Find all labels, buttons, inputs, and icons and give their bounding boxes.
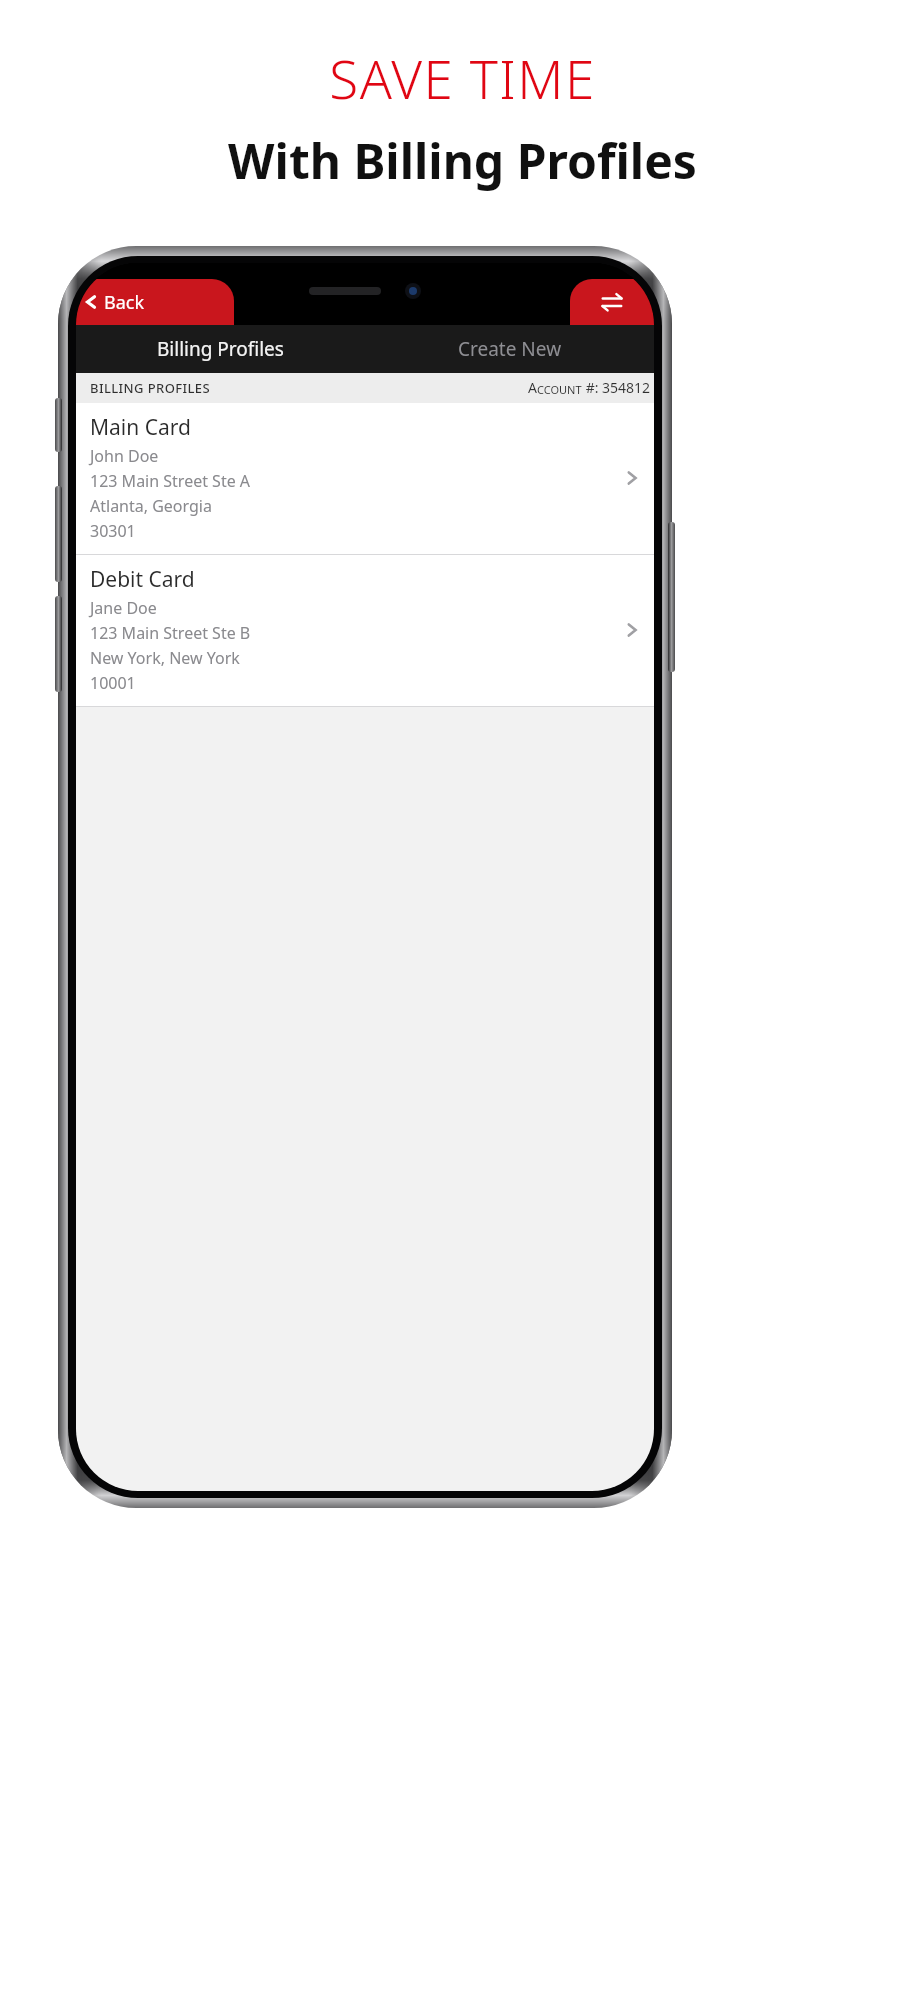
staticText: 30301 — [90, 520, 136, 542]
staticText: BILLING PROFILES — [90, 379, 211, 397]
staticText: Main Card — [90, 413, 191, 442]
staticText: CCOUNT — [537, 382, 582, 397]
staticText: A — [528, 378, 537, 397]
staticText: Back — [104, 290, 145, 315]
staticText: New York, New York — [90, 647, 240, 669]
staticText: Atlanta, Georgia — [90, 495, 212, 517]
button[interactable]: Switch account — [570, 279, 654, 325]
staticText: 123 Main Street Ste A — [90, 470, 251, 492]
staticText: Jane Doe — [90, 597, 157, 619]
staticText: Create New — [458, 336, 562, 362]
staticText: #: 354812 — [582, 378, 651, 397]
staticText: John Doe — [90, 445, 159, 467]
button[interactable]: Debit Card — [76, 555, 654, 706]
button[interactable]: Back — [76, 279, 234, 325]
staticText: Debit Card — [90, 565, 195, 594]
button[interactable]: Create New — [365, 325, 654, 373]
staticText: With Billing Profiles — [228, 128, 697, 193]
staticText: 123 Main Street Ste B — [90, 622, 251, 644]
staticText: SAVE TIME — [329, 42, 596, 114]
button[interactable]: Main Card — [76, 403, 654, 554]
button[interactable]: Billing Profiles — [76, 325, 365, 373]
staticText: 10001 — [90, 672, 136, 694]
staticText: Billing Profiles — [157, 336, 284, 362]
